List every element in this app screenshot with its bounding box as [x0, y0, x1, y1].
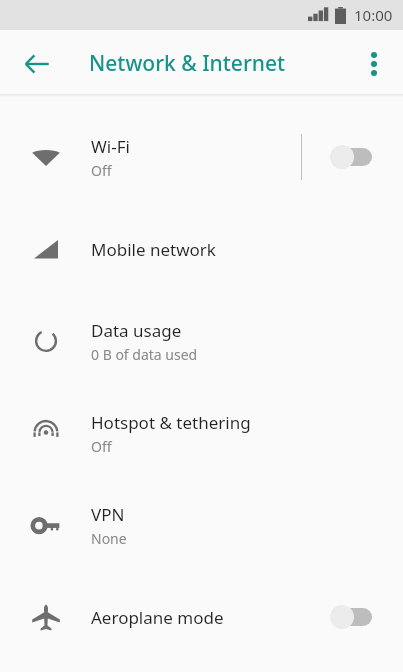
staticText: Mobile network	[91, 238, 216, 261]
staticText: Data usage	[91, 319, 182, 342]
staticText: Off	[91, 161, 112, 180]
button[interactable]: Hotspot & tethering	[0, 387, 403, 479]
button[interactable]: VPN	[0, 479, 403, 571]
staticText: Network & Internet	[89, 49, 286, 78]
button[interactable]: Mobile network	[0, 203, 403, 295]
staticText: Aeroplane mode	[91, 606, 224, 629]
staticText: Off	[91, 437, 112, 456]
button[interactable]: Aeroplane mode	[0, 571, 403, 663]
button[interactable]: Data usage	[0, 295, 403, 387]
staticText: Wi-Fi	[91, 135, 130, 158]
button[interactable]: Wi-Fi toggle	[328, 133, 390, 181]
button[interactable]: Aeroplane mode toggle	[328, 593, 390, 641]
staticText: Hotspot & tethering	[91, 411, 251, 434]
button[interactable]: More options	[349, 39, 399, 89]
staticText: 0 B of data used	[91, 345, 198, 364]
staticText: 10:00	[354, 5, 393, 25]
button[interactable]: Back	[10, 37, 64, 91]
button[interactable]: Wi-Fi	[0, 111, 403, 203]
staticText: VPN	[91, 503, 125, 526]
staticText: None	[91, 529, 127, 548]
